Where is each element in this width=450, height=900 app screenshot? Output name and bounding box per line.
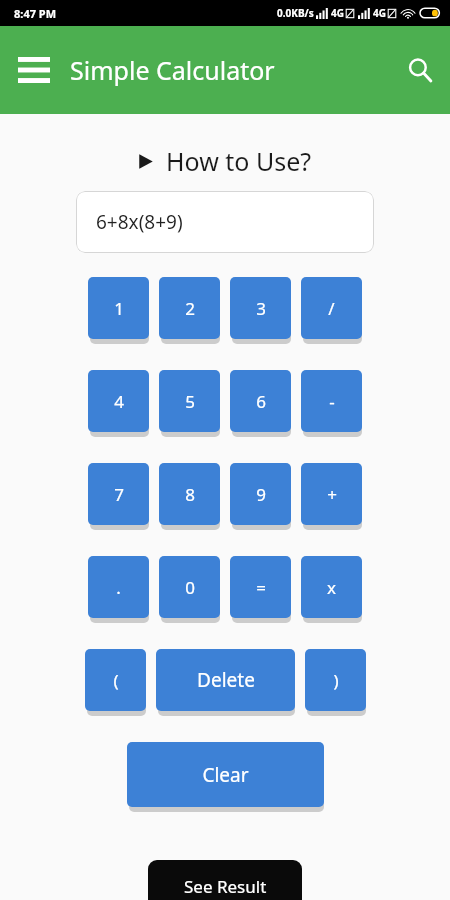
button[interactable]: ( (85, 649, 146, 711)
button[interactable]: 0 (159, 556, 220, 618)
button[interactable]: Open navigation menu (10, 46, 58, 94)
staticText: 8 (185, 483, 195, 506)
button[interactable]: ) (305, 649, 366, 711)
staticText: How to Use? (166, 144, 312, 178)
staticText: ) (333, 669, 339, 692)
staticText: = (256, 576, 266, 599)
staticText: 0 (185, 576, 195, 599)
staticText: 9 (256, 483, 266, 506)
staticText: Simple Calculator (70, 53, 275, 87)
button[interactable]: 8 (159, 463, 220, 525)
button[interactable]: - (301, 370, 362, 432)
button[interactable]: Delete (156, 649, 295, 711)
staticText: 5 (185, 390, 195, 413)
staticText: 4 (114, 390, 124, 413)
button[interactable]: x (301, 556, 362, 618)
staticText: . (116, 576, 121, 599)
staticText: 3 (256, 297, 266, 320)
button[interactable]: = (230, 556, 291, 618)
staticText: See Result (184, 875, 267, 898)
button[interactable]: 6 (230, 370, 291, 432)
staticText: 7 (114, 483, 124, 506)
button[interactable]: Search (396, 46, 444, 94)
button[interactable]: + (301, 463, 362, 525)
button[interactable]: 6+8x(8+9) (76, 191, 374, 253)
staticText: ( (113, 669, 119, 692)
button[interactable]: / (301, 277, 362, 339)
button[interactable]: How to Use? (0, 144, 450, 178)
button[interactable]: 4 (88, 370, 149, 432)
staticText: - (329, 390, 335, 413)
staticText: Clear (202, 762, 249, 788)
staticText: x (327, 576, 336, 599)
button[interactable]: See Result (148, 860, 302, 900)
staticText: 1 (114, 297, 124, 320)
button[interactable]: 9 (230, 463, 291, 525)
button[interactable]: 7 (88, 463, 149, 525)
staticText: 8:47 PM (14, 6, 57, 21)
button[interactable]: . (88, 556, 149, 618)
button[interactable]: 5 (159, 370, 220, 432)
staticText: 0.0KB/s (277, 6, 314, 20)
staticText: 2 (185, 297, 195, 320)
staticText: / (328, 297, 335, 320)
staticText: + (327, 483, 337, 506)
staticText: 4G (331, 6, 344, 20)
staticText: 6+8x(8+9) (96, 209, 183, 235)
button[interactable]: Clear (127, 742, 324, 807)
button[interactable]: 1 (88, 277, 149, 339)
staticText: 6 (256, 390, 266, 413)
staticText: Delete (197, 667, 255, 693)
button[interactable]: 3 (230, 277, 291, 339)
staticText: 4G (373, 6, 386, 20)
button[interactable]: 2 (159, 277, 220, 339)
